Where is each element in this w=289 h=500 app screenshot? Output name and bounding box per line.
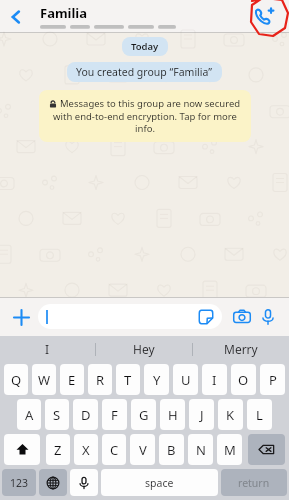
staticText: Y bbox=[153, 371, 161, 389]
button[interactable]: 123 bbox=[2, 469, 36, 496]
button[interactable]: K bbox=[218, 399, 243, 430]
button[interactable]: D bbox=[73, 399, 98, 430]
staticText: with end-to-end encryption. Tap for more… bbox=[53, 110, 237, 135]
button[interactable]: Z bbox=[46, 434, 70, 465]
button[interactable]: P bbox=[260, 364, 285, 395]
button[interactable]: I bbox=[202, 364, 227, 395]
staticText: space bbox=[145, 476, 174, 490]
staticText: T bbox=[124, 371, 132, 389]
button[interactable]: Q bbox=[4, 364, 28, 395]
button[interactable]: Stickers bbox=[38, 304, 222, 329]
staticText: U bbox=[181, 371, 191, 389]
button[interactable]: R bbox=[88, 364, 112, 395]
staticText: return bbox=[238, 476, 270, 490]
button[interactable]: Dictate bbox=[70, 469, 98, 496]
staticText: M bbox=[224, 441, 236, 459]
button[interactable]: Y bbox=[144, 364, 169, 395]
button[interactable]: Change keyboard bbox=[39, 469, 67, 496]
button[interactable]: N bbox=[188, 434, 213, 465]
button[interactable]: Hey bbox=[96, 336, 192, 362]
staticText: Familia bbox=[40, 4, 88, 22]
staticText: A bbox=[25, 406, 34, 424]
button[interactable]: J bbox=[189, 399, 214, 430]
staticText: W bbox=[38, 371, 51, 389]
button[interactable]: L bbox=[247, 399, 272, 430]
staticText: D bbox=[81, 406, 91, 424]
staticText: C bbox=[110, 441, 119, 459]
button[interactable]: Shift bbox=[4, 434, 40, 465]
button[interactable]: W bbox=[32, 364, 56, 395]
staticText: B bbox=[167, 441, 176, 459]
staticText: G bbox=[139, 406, 149, 424]
other: Stickers bbox=[198, 309, 214, 325]
button[interactable]: Voice message bbox=[255, 304, 281, 330]
button[interactable]: Camera bbox=[229, 304, 255, 330]
button[interactable]: M bbox=[217, 434, 242, 465]
button[interactable]: H bbox=[160, 399, 185, 430]
staticText: Q bbox=[11, 371, 22, 389]
staticText: S bbox=[53, 406, 61, 424]
button[interactable]: B bbox=[159, 434, 184, 465]
button[interactable]: I bbox=[0, 336, 95, 362]
button[interactable]: Backspace bbox=[248, 434, 285, 465]
staticText: H bbox=[168, 406, 178, 424]
button[interactable]: F bbox=[102, 399, 127, 430]
staticText: Z bbox=[54, 441, 62, 459]
staticText: K bbox=[226, 406, 235, 424]
button[interactable]: C bbox=[102, 434, 126, 465]
button[interactable]: Messages to this group are now secured bbox=[39, 90, 251, 142]
staticText: I bbox=[45, 341, 50, 357]
staticText: P bbox=[269, 371, 277, 389]
staticText: L bbox=[256, 406, 263, 424]
button[interactable]: space bbox=[101, 469, 218, 496]
button[interactable]: Today bbox=[122, 37, 168, 56]
staticText: J bbox=[200, 406, 204, 424]
staticText: Hey bbox=[133, 341, 155, 357]
staticText: E bbox=[68, 371, 76, 389]
button[interactable]: Merry bbox=[193, 336, 289, 362]
staticText: F bbox=[111, 406, 118, 424]
button[interactable]: You created group “Familia” bbox=[67, 62, 222, 82]
button[interactable]: S bbox=[45, 399, 69, 430]
staticText: X bbox=[82, 441, 90, 459]
button[interactable]: U bbox=[173, 364, 198, 395]
staticText: 123 bbox=[10, 476, 29, 490]
staticText: O bbox=[238, 371, 249, 389]
button[interactable]: O bbox=[231, 364, 256, 395]
staticText: Today bbox=[131, 40, 159, 53]
button[interactable]: Back bbox=[0, 0, 32, 33]
button[interactable]: G bbox=[131, 399, 156, 430]
staticText: Merry bbox=[224, 341, 258, 357]
button[interactable]: T bbox=[116, 364, 140, 395]
button[interactable]: Add call bbox=[239, 0, 289, 33]
staticText: Messages to this group are now secured bbox=[60, 97, 241, 110]
button[interactable]: Attach bbox=[8, 304, 34, 330]
button[interactable]: return bbox=[221, 469, 287, 496]
button[interactable]: X bbox=[74, 434, 98, 465]
staticText: I bbox=[212, 371, 217, 389]
staticText: V bbox=[139, 441, 147, 459]
button[interactable]: A bbox=[17, 399, 41, 430]
button[interactable]: E bbox=[60, 364, 84, 395]
staticText: You created group “Familia” bbox=[76, 65, 213, 79]
staticText: N bbox=[196, 441, 206, 459]
staticText: R bbox=[96, 371, 105, 389]
button[interactable]: V bbox=[130, 434, 155, 465]
